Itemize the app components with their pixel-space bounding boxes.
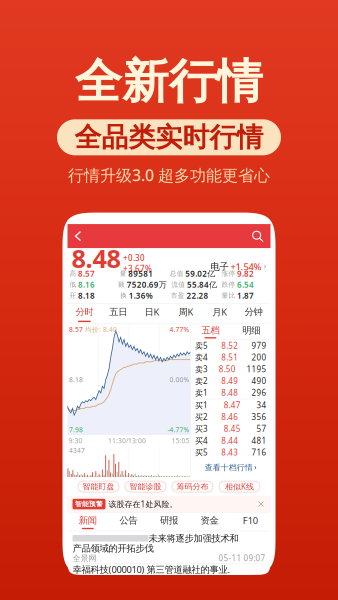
staticText: 买2 <box>195 412 208 422</box>
staticText: +3.67% <box>123 263 152 274</box>
button[interactable]: 新闻 <box>67 513 108 531</box>
staticText: 行情升级3.0 超多功能更省心 <box>68 164 270 185</box>
staticText: 换 <box>120 291 127 300</box>
staticText: 月K <box>212 306 227 318</box>
button[interactable]: F10 <box>230 513 270 531</box>
staticText: 市盈 <box>171 291 185 300</box>
staticText: 57 <box>256 423 266 434</box>
button[interactable]: 周K <box>169 303 203 324</box>
staticText: 买4 <box>195 435 208 446</box>
button[interactable]: 智能诊股 <box>125 481 166 492</box>
staticText: 59.02亿 <box>185 268 215 279</box>
staticText: 买5 <box>195 447 208 458</box>
staticText: 五档 <box>201 325 219 336</box>
staticText: 11:30/13:00 <box>108 436 146 445</box>
staticText: 9.82 <box>237 268 254 279</box>
staticText: 买1 <box>195 400 208 410</box>
staticText: 716 <box>251 447 266 458</box>
button[interactable]: 查看十档行情 <box>205 461 257 474</box>
button[interactable]: 明细 <box>231 324 271 339</box>
staticText: 筹码分布 <box>176 482 208 491</box>
button[interactable]: 筹码分布 <box>172 481 213 492</box>
staticText: +0.30 <box>123 253 145 263</box>
staticText: 电子 <box>210 261 228 272</box>
staticText: 卖3 <box>195 364 208 374</box>
staticText: 额 <box>118 280 125 289</box>
staticText: 量比 <box>221 291 235 300</box>
staticText: 979 <box>251 340 266 351</box>
button[interactable]: 关闭 <box>256 500 265 509</box>
button[interactable]: 资金 <box>189 513 230 531</box>
staticText: 卖5 <box>195 340 208 351</box>
staticText: 流值 <box>171 280 185 289</box>
staticText: 幸福科技(000010) 第三管道融社的事业. <box>72 563 230 576</box>
staticText: 卖4 <box>195 352 208 363</box>
staticText: 6.54 <box>237 279 254 290</box>
staticText: 研报 <box>160 514 178 526</box>
staticText: 22.28 <box>186 290 208 301</box>
button[interactable]: 五档 <box>190 324 231 339</box>
staticText: 4347 <box>69 446 85 455</box>
staticText: 15:05 <box>171 436 189 445</box>
staticText: 8.16 <box>78 279 95 290</box>
button[interactable]: 公告 <box>108 513 149 531</box>
staticText: 资金 <box>201 514 219 526</box>
staticText: 34 <box>256 400 266 410</box>
staticText: 全品类实时行情 <box>74 121 263 154</box>
button[interactable]: 五日 <box>101 303 135 324</box>
staticText: 明细 <box>242 325 260 336</box>
button[interactable]: 全品类实时行情 <box>57 119 281 155</box>
staticText: 0.00% <box>169 375 189 384</box>
staticText: 7520.69万 <box>127 279 167 290</box>
staticText: 481 <box>251 435 266 446</box>
staticText: 公告 <box>119 514 137 526</box>
staticText: 开 <box>69 291 76 300</box>
staticText: 8.44 <box>221 435 238 446</box>
staticText: 8.49 <box>221 376 238 386</box>
button[interactable]: 智能盯盘 <box>78 481 119 492</box>
staticText: 查看十档行情 <box>205 463 253 473</box>
staticText: 8.45 <box>224 423 241 434</box>
staticText: 卖2 <box>195 376 208 386</box>
staticText: 分时 <box>75 306 93 318</box>
staticText: 日K <box>145 306 160 318</box>
button[interactable]: 搜索 <box>247 225 267 247</box>
button[interactable]: 研报 <box>149 513 189 531</box>
staticText: 五日 <box>109 306 127 318</box>
staticText: 高 <box>69 269 76 278</box>
staticText: 296 <box>251 387 266 398</box>
staticText: 低 <box>69 280 76 289</box>
staticText: 8.47 <box>224 400 241 410</box>
button[interactable]: 分时 <box>67 303 101 324</box>
staticText: +1.54% <box>230 260 261 273</box>
staticText: 1195 <box>246 364 266 374</box>
staticText: 未来将逐步加强技术和 <box>148 532 238 544</box>
button[interactable]: 日K <box>135 303 169 324</box>
staticText: F10 <box>243 514 258 526</box>
staticText: 7.98 <box>69 425 83 434</box>
staticText: 均价: 8.40 <box>83 325 117 334</box>
button[interactable]: 相似K线 <box>219 481 260 492</box>
button[interactable]: 月K <box>203 303 237 324</box>
staticText: 分钟 <box>245 306 263 318</box>
staticText: 8.52 <box>221 340 238 351</box>
staticText: 8.18 <box>69 375 83 384</box>
staticText: 8.43 <box>221 447 238 458</box>
staticText: 跌停 <box>221 280 235 289</box>
button[interactable]: 分钟 <box>237 303 270 324</box>
staticText: 全景网 <box>72 553 96 563</box>
staticText: 05-11 09:07 <box>218 553 265 564</box>
staticText: 8.51 <box>221 352 238 363</box>
staticText: 智能诊股 <box>129 482 161 491</box>
staticText: 55.84亿 <box>187 279 217 290</box>
staticText: 产品领域的开拓步伐 <box>72 542 153 554</box>
staticText: 200 <box>251 352 266 363</box>
staticText: 该股存在1处风险。 <box>108 499 177 509</box>
button[interactable]: 返回 <box>69 225 86 248</box>
staticText: 8.48 <box>221 387 238 398</box>
staticText: 相似K线 <box>225 481 254 492</box>
staticText: 1.87 <box>237 290 254 301</box>
staticText: 周K <box>178 306 193 318</box>
staticText: 4.77% <box>169 325 189 334</box>
staticText: 总值 <box>170 269 184 278</box>
